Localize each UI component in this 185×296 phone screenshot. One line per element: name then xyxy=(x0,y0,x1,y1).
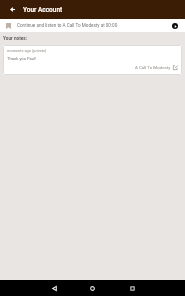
staticText: Your notes: xyxy=(3,36,28,42)
button[interactable]: Home xyxy=(85,281,99,295)
staticText: Continue and listen to A Call To Modesty… xyxy=(17,23,118,28)
button[interactable]: moments ago (private) xyxy=(3,45,182,75)
button[interactable]: Continue and listen to A Call To Modesty… xyxy=(0,19,185,32)
staticText: Thank you Paul! xyxy=(7,56,37,61)
button[interactable]: Recent apps xyxy=(125,281,139,295)
button[interactable]: Play xyxy=(172,23,178,29)
staticText: moments ago (private) xyxy=(7,48,47,53)
staticText: Your Account xyxy=(23,6,63,14)
staticText: A Call To Modesty xyxy=(135,65,171,70)
button[interactable]: Back xyxy=(47,281,61,295)
button[interactable]: Back xyxy=(3,0,22,19)
